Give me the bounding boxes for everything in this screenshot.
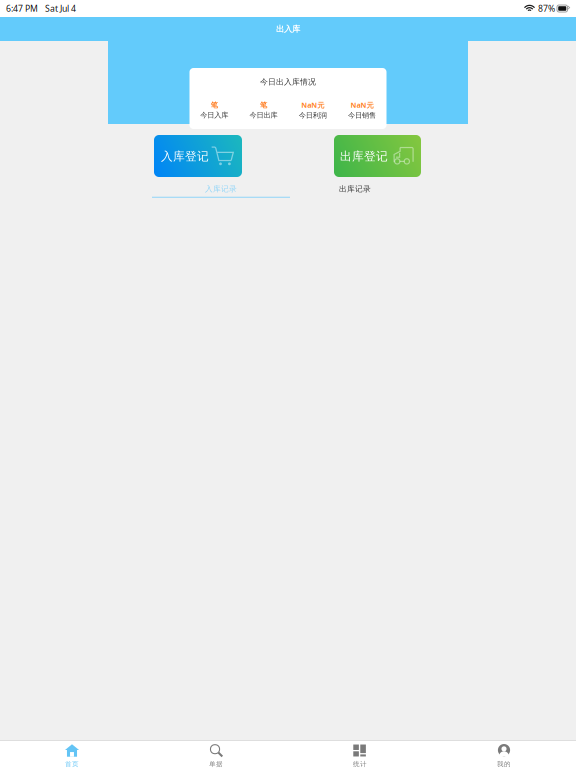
staticText: 6:47 PM — [6, 3, 38, 14]
staticText: NaN元 — [301, 100, 324, 110]
staticText: 出入库 — [276, 24, 300, 34]
staticText: 今日利润 — [299, 111, 327, 120]
button[interactable]: 入库登记 — [154, 135, 242, 177]
staticText: 单据 — [209, 760, 223, 768]
button[interactable]: 统计 — [288, 741, 432, 768]
staticText: 87% — [538, 3, 555, 14]
staticText: 笔 — [211, 100, 218, 110]
staticText: 出库登记 — [340, 149, 388, 164]
button[interactable]: 首页 — [0, 741, 144, 768]
staticText: NaN元 — [350, 100, 373, 110]
staticText: 今日入库 — [200, 110, 228, 120]
button[interactable]: 出库记录 — [339, 184, 477, 198]
staticText: Sat Jul 4 — [45, 3, 76, 14]
staticText: 我的 — [497, 760, 511, 768]
staticText: 入库登记 — [161, 149, 209, 164]
staticText: 今日出入库情况 — [260, 77, 316, 87]
button[interactable]: 单据 — [144, 741, 288, 768]
staticText: 出库记录 — [339, 184, 371, 194]
button[interactable]: 入库记录 — [152, 184, 290, 198]
staticText: 统计 — [353, 760, 367, 768]
staticText: 入库记录 — [205, 184, 237, 194]
button[interactable]: 我的 — [432, 741, 576, 768]
staticText: 首页 — [65, 760, 79, 768]
staticText: 今日销售 — [348, 111, 376, 120]
button[interactable]: 出库登记 — [334, 135, 421, 177]
staticText: 今日出库 — [249, 110, 277, 120]
staticText: 笔 — [260, 100, 267, 110]
